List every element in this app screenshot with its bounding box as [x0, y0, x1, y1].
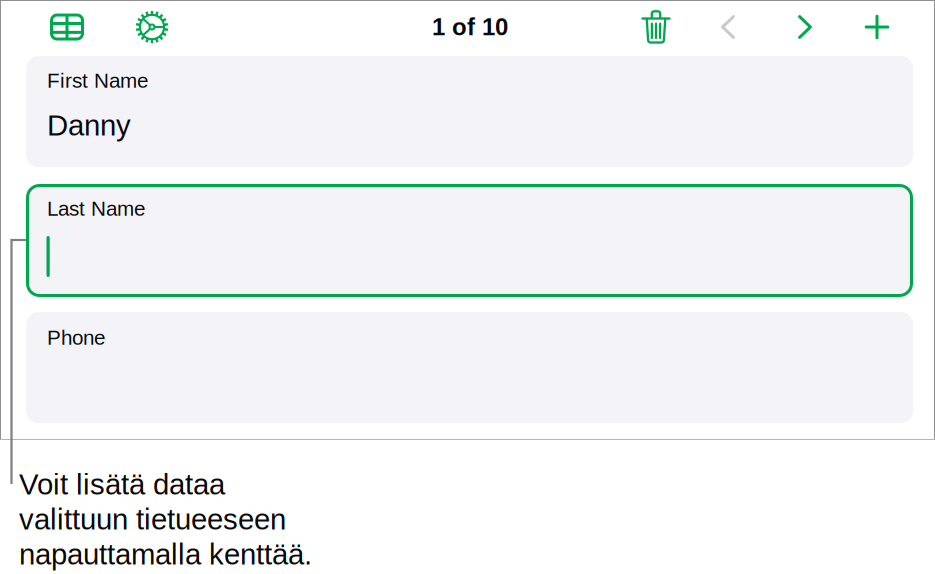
button[interactable]: Phone [26, 312, 913, 423]
staticText: valittuun tietueeseen [19, 503, 286, 536]
button[interactable]: Settings [126, 3, 178, 51]
staticText: Danny [47, 109, 131, 142]
button[interactable]: Table view [41, 3, 93, 51]
button[interactable]: Delete record [630, 3, 682, 51]
button[interactable]: First Name [26, 56, 913, 167]
staticText: First Name [47, 69, 148, 92]
button[interactable]: Next record [779, 3, 831, 51]
staticText: Phone [47, 326, 105, 349]
button[interactable]: Add record [851, 3, 903, 51]
staticText: Voit lisätä dataa [19, 468, 225, 501]
staticText: Last Name [47, 197, 145, 220]
button[interactable]: Previous record [702, 3, 754, 51]
staticText: napauttamalla kenttää. [19, 538, 312, 571]
button[interactable]: Last Name [26, 184, 913, 297]
staticText: 1 of 10 [432, 14, 508, 40]
